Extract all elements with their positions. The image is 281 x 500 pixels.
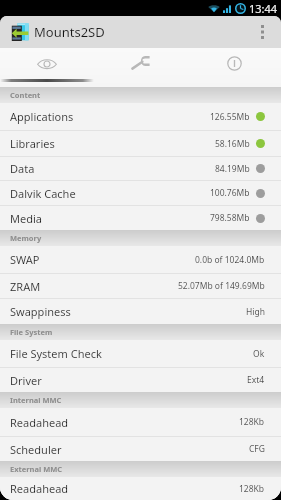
staticText: Libraries	[10, 136, 55, 151]
button[interactable]: ZRAM	[0, 274, 281, 298]
staticText: ZRAM	[10, 279, 41, 294]
button[interactable]: Libraries	[0, 131, 281, 156]
button[interactable]: Scheduler	[0, 437, 281, 461]
staticText: Dalvik Cache	[10, 186, 76, 201]
button[interactable]: Overview	[0, 48, 93, 79]
button[interactable]: Applications	[0, 103, 281, 130]
staticText: 100.76Mb	[210, 187, 250, 199]
staticText: Internal MMC	[10, 395, 62, 405]
staticText: Driver	[10, 373, 42, 388]
staticText: High	[246, 306, 265, 318]
staticText: 52.07Mb of 149.69Mb	[178, 280, 265, 292]
button[interactable]: File System Check	[0, 340, 281, 367]
button[interactable]: Media	[0, 206, 281, 230]
button[interactable]: Readahead	[0, 477, 281, 500]
button[interactable]: Data	[0, 157, 281, 180]
staticText: File System	[10, 327, 53, 337]
staticText: Readahead	[10, 481, 69, 496]
staticText: Media	[10, 211, 42, 226]
staticText: External MMC	[10, 464, 63, 474]
staticText: Mounts2SD	[34, 23, 105, 41]
staticText: Ok	[253, 348, 265, 360]
button[interactable]: Swappiness	[0, 299, 281, 324]
staticText: Swappiness	[10, 304, 71, 319]
button[interactable]: SWAP	[0, 246, 281, 273]
button[interactable]: Info	[187, 48, 281, 79]
staticText: Scheduler	[10, 442, 62, 457]
button[interactable]: Driver	[0, 368, 281, 392]
staticText: 58.16Mb	[215, 138, 250, 150]
staticText: SWAP	[10, 252, 40, 267]
staticText: Content	[10, 90, 41, 100]
button[interactable]: More options	[244, 16, 281, 48]
staticText: 13:44	[249, 1, 278, 16]
button[interactable]: Readahead	[0, 408, 281, 436]
staticText: CFG	[249, 443, 265, 455]
staticText: 128Kb	[239, 416, 265, 428]
staticText: Readahead	[10, 415, 69, 430]
staticText: 128Kb	[239, 483, 265, 495]
staticText: 126.55Mb	[210, 111, 250, 123]
staticText: Ext4	[247, 374, 265, 386]
staticText: 84.19Mb	[215, 163, 250, 175]
staticText: Memory	[10, 233, 42, 243]
button[interactable]: Settings	[93, 48, 187, 79]
staticText: 0.0b of 1024.0Mb	[195, 254, 265, 266]
staticText: File System Check	[10, 346, 102, 361]
staticText: Data	[10, 161, 35, 176]
button[interactable]: Dalvik Cache	[0, 181, 281, 205]
staticText: Applications	[10, 109, 74, 124]
staticText: 798.58Mb	[210, 212, 250, 224]
